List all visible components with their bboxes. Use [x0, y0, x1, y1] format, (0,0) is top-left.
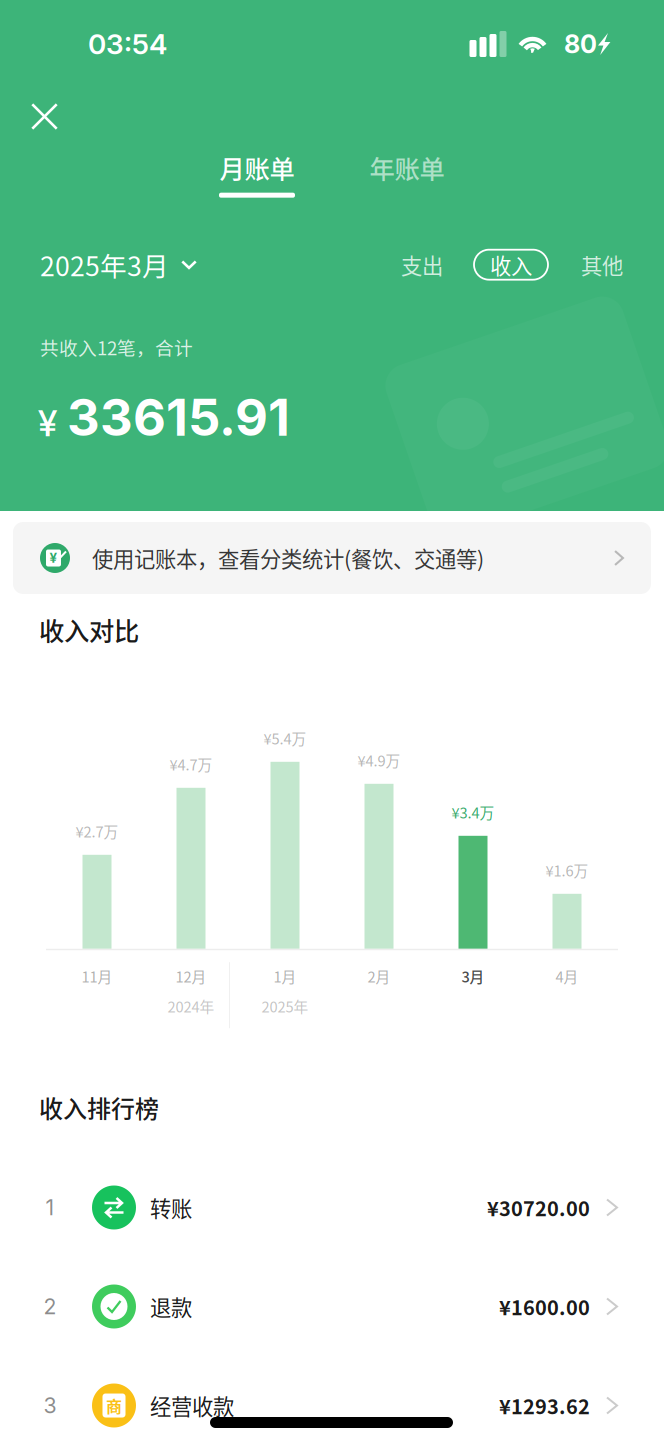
staticText: 年账单	[369, 149, 444, 186]
staticText: 2	[43, 1294, 56, 1319]
button[interactable]: 其他	[572, 245, 632, 285]
button[interactable]: Close	[0, 88, 80, 145]
staticText: 共收入12笔，合计	[40, 334, 193, 361]
staticText: ¥	[49, 550, 57, 566]
staticText: 2月	[367, 966, 390, 987]
staticText: ¥4.9万	[357, 750, 400, 771]
staticText: 退款	[150, 1291, 192, 1322]
button[interactable]: 月账单	[182, 149, 332, 198]
staticText: 2025年3月	[40, 245, 169, 284]
staticText: 支出	[401, 249, 443, 280]
staticText: 转账	[150, 1192, 192, 1223]
staticText: 80	[564, 29, 597, 59]
staticText: 2024年	[167, 996, 214, 1017]
button[interactable]: 1	[0, 1158, 664, 1257]
staticText: 3	[43, 1393, 56, 1418]
button[interactable]: 2	[0, 1257, 664, 1356]
staticText: ¥3.4万	[451, 802, 494, 823]
staticText: 4月	[555, 966, 578, 987]
staticText: 经营收款	[150, 1390, 234, 1421]
staticText: 其他	[581, 249, 623, 280]
staticText: 月账单	[219, 149, 294, 186]
staticText: 12月	[175, 966, 206, 987]
staticText: 商	[106, 1394, 122, 1417]
staticText: ¥1.6万	[545, 860, 588, 881]
staticText: ¥2.7万	[75, 821, 118, 842]
staticText: ¥4.7万	[169, 754, 212, 775]
staticText: ¥1600.00	[499, 1292, 590, 1321]
staticText: 收入对比	[39, 611, 139, 648]
staticText: 3月	[461, 966, 484, 987]
button[interactable]: 年账单	[332, 149, 482, 198]
staticText: 2025年	[261, 996, 308, 1017]
staticText: 收入排行榜	[39, 1090, 159, 1125]
button[interactable]: 3	[0, 1356, 664, 1439]
button[interactable]: 2025年3月	[40, 245, 197, 285]
staticText: 33615.91	[67, 387, 290, 448]
staticText: ¥	[38, 401, 57, 445]
button[interactable]: ¥	[13, 522, 651, 594]
staticText: 1月	[273, 966, 296, 987]
staticText: ¥5.4万	[263, 728, 306, 749]
button[interactable]: 支出	[392, 245, 452, 285]
staticText: ¥1293.62	[499, 1391, 590, 1420]
staticText: 使用记账本，查看分类统计(餐饮、交通等)	[92, 543, 484, 573]
staticText: 11月	[81, 966, 112, 987]
staticText: 03:54	[88, 27, 167, 61]
button[interactable]: 收入	[474, 250, 548, 280]
staticText: 收入	[490, 249, 532, 280]
staticText: 1	[45, 1195, 54, 1220]
staticText: ¥30720.00	[487, 1193, 590, 1222]
